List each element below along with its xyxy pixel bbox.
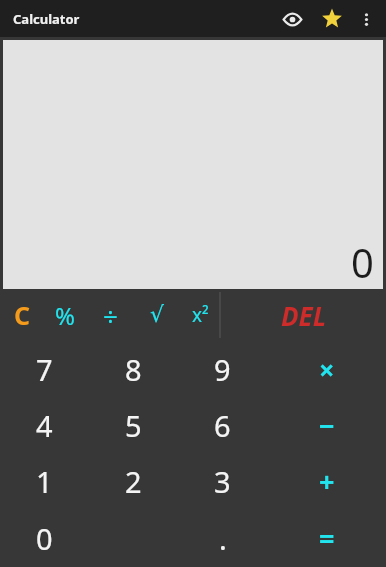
- staticText: 2: [125, 462, 142, 501]
- button[interactable]: ×: [267, 341, 386, 397]
- button[interactable]: .: [178, 510, 267, 567]
- button[interactable]: 6: [178, 397, 267, 453]
- staticText: Calculator: [13, 10, 80, 28]
- staticText: √: [150, 302, 165, 328]
- staticText: 9: [214, 350, 231, 389]
- button[interactable]: DEL: [221, 289, 386, 341]
- button[interactable]: +: [267, 453, 386, 510]
- staticText: 5: [125, 406, 142, 445]
- staticText: .: [219, 519, 227, 558]
- staticText: −: [319, 407, 335, 444]
- button[interactable]: More options: [352, 5, 380, 33]
- button[interactable]: Percent: [44, 289, 86, 341]
- button[interactable]: =: [267, 510, 386, 567]
- button[interactable]: 4: [0, 397, 89, 453]
- staticText: 6: [214, 406, 231, 445]
- staticText: 7: [36, 350, 53, 389]
- button[interactable]: Preview: [276, 3, 308, 35]
- button[interactable]: 7: [0, 341, 89, 397]
- staticText: 3: [214, 462, 231, 501]
- button[interactable]: 8: [89, 341, 178, 397]
- staticText: ÷: [103, 298, 118, 333]
- staticText: 0: [351, 235, 374, 289]
- button[interactable]: Square: [179, 289, 221, 341]
- button[interactable]: 9: [178, 341, 267, 397]
- button[interactable]: −: [267, 397, 386, 453]
- button[interactable]: 3: [178, 453, 267, 510]
- button[interactable]: 5: [89, 397, 178, 453]
- staticText: x²: [192, 302, 209, 328]
- staticText: ×: [319, 351, 335, 388]
- staticText: %: [55, 299, 75, 332]
- staticText: +: [319, 463, 335, 500]
- staticText: 4: [36, 406, 53, 445]
- staticText: 1: [36, 462, 53, 501]
- button[interactable]: Square root: [135, 289, 179, 341]
- staticText: 0: [36, 519, 53, 558]
- staticText: =: [319, 520, 335, 557]
- button[interactable]: 2: [89, 453, 178, 510]
- button[interactable]: 1: [0, 453, 89, 510]
- staticText: 8: [125, 350, 142, 389]
- button[interactable]: 0: [0, 510, 89, 567]
- staticText: C: [14, 298, 31, 332]
- button[interactable]: Favorite: [316, 3, 348, 35]
- button[interactable]: Clear: [0, 289, 44, 341]
- staticText: DEL: [281, 298, 327, 333]
- button[interactable]: Divide: [86, 289, 135, 341]
